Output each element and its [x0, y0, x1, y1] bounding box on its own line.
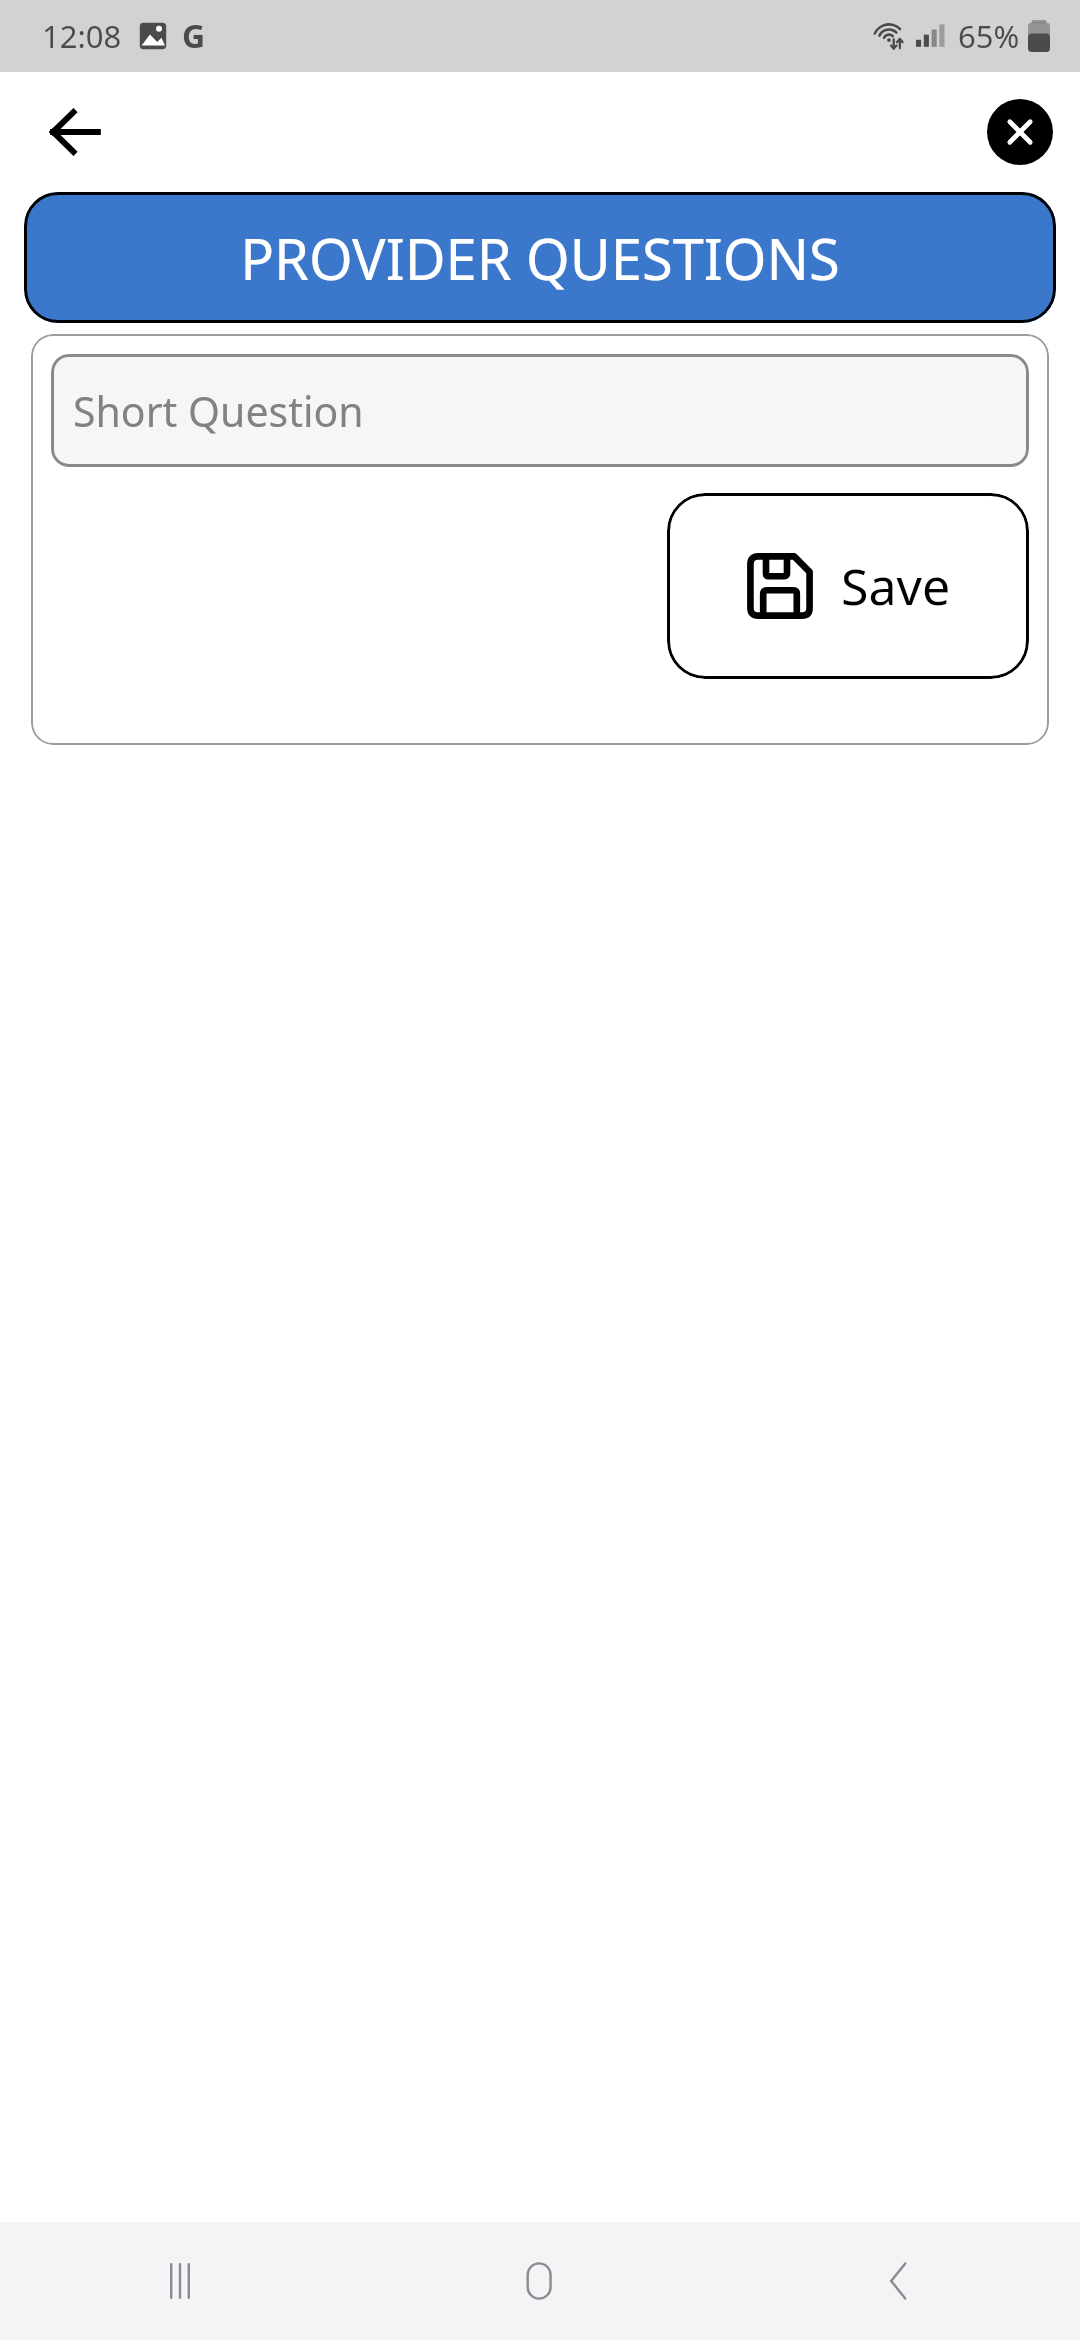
- staticText: Short Question: [73, 383, 364, 439]
- button[interactable]: Home: [360, 2222, 720, 2340]
- button[interactable]: Back: [26, 82, 126, 182]
- button[interactable]: Recents: [0, 2222, 360, 2340]
- button[interactable]: Short Question: [51, 354, 1029, 467]
- button[interactable]: Save: [667, 493, 1029, 679]
- button[interactable]: PROVIDER QUESTIONS: [24, 192, 1056, 323]
- button[interactable]: Back: [720, 2222, 1080, 2340]
- staticText: G: [182, 14, 206, 58]
- button[interactable]: Close: [987, 99, 1053, 165]
- staticText: Save: [841, 552, 951, 620]
- staticText: 12:08: [42, 15, 122, 57]
- staticText: 65%: [958, 15, 1020, 57]
- staticText: PROVIDER QUESTIONS: [240, 220, 840, 296]
